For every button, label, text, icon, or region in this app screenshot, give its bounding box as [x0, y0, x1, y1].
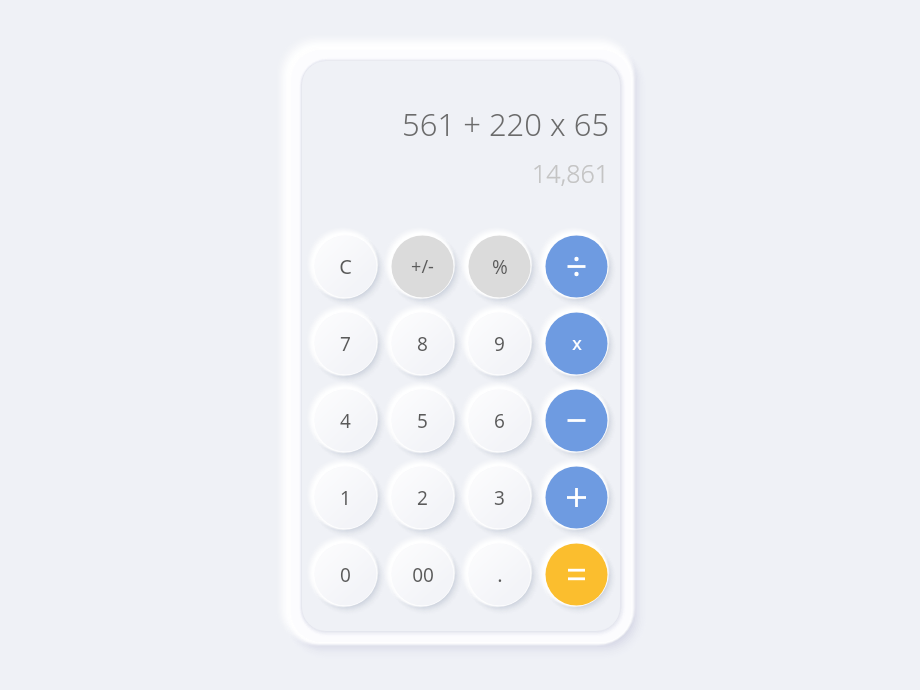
staticText: 1 — [340, 485, 351, 511]
staticText: 8 — [417, 331, 428, 357]
button[interactable]: 5 — [384, 382, 461, 459]
staticText: 561 + 220 x 65 — [402, 103, 610, 145]
button[interactable]: 4 — [307, 382, 384, 459]
staticText: 4 — [340, 408, 351, 434]
staticText: % — [492, 254, 508, 280]
button[interactable]: 9 — [461, 305, 538, 382]
button[interactable]: C — [307, 228, 384, 305]
staticText: x — [572, 331, 582, 356]
staticText: +/- — [411, 254, 434, 279]
button[interactable]: 7 — [307, 305, 384, 382]
staticText: 0 — [340, 562, 351, 588]
button[interactable]: 8 — [384, 305, 461, 382]
button[interactable]: 0 — [307, 536, 384, 613]
button[interactable]: Equals — [538, 536, 615, 613]
button[interactable]: x — [538, 305, 615, 382]
staticText: 3 — [494, 485, 505, 511]
button[interactable]: 3 — [461, 459, 538, 536]
button[interactable]: % — [461, 228, 538, 305]
button[interactable]: +/- — [384, 228, 461, 305]
button[interactable]: Divide — [538, 228, 615, 305]
staticText: 6 — [494, 408, 505, 434]
staticText: . — [497, 561, 503, 588]
button[interactable]: Minus — [538, 382, 615, 459]
button[interactable]: 2 — [384, 459, 461, 536]
staticText: 14,861 — [532, 156, 610, 190]
staticText: 00 — [412, 562, 434, 588]
button[interactable]: 1 — [307, 459, 384, 536]
button[interactable]: Plus — [538, 459, 615, 536]
staticText: 9 — [494, 331, 505, 357]
staticText: 2 — [417, 485, 428, 511]
button[interactable]: . — [461, 536, 538, 613]
staticText: 7 — [340, 331, 351, 357]
button[interactable]: 00 — [384, 536, 461, 613]
staticText: C — [339, 253, 352, 280]
button[interactable]: 6 — [461, 382, 538, 459]
staticText: 5 — [417, 408, 428, 434]
